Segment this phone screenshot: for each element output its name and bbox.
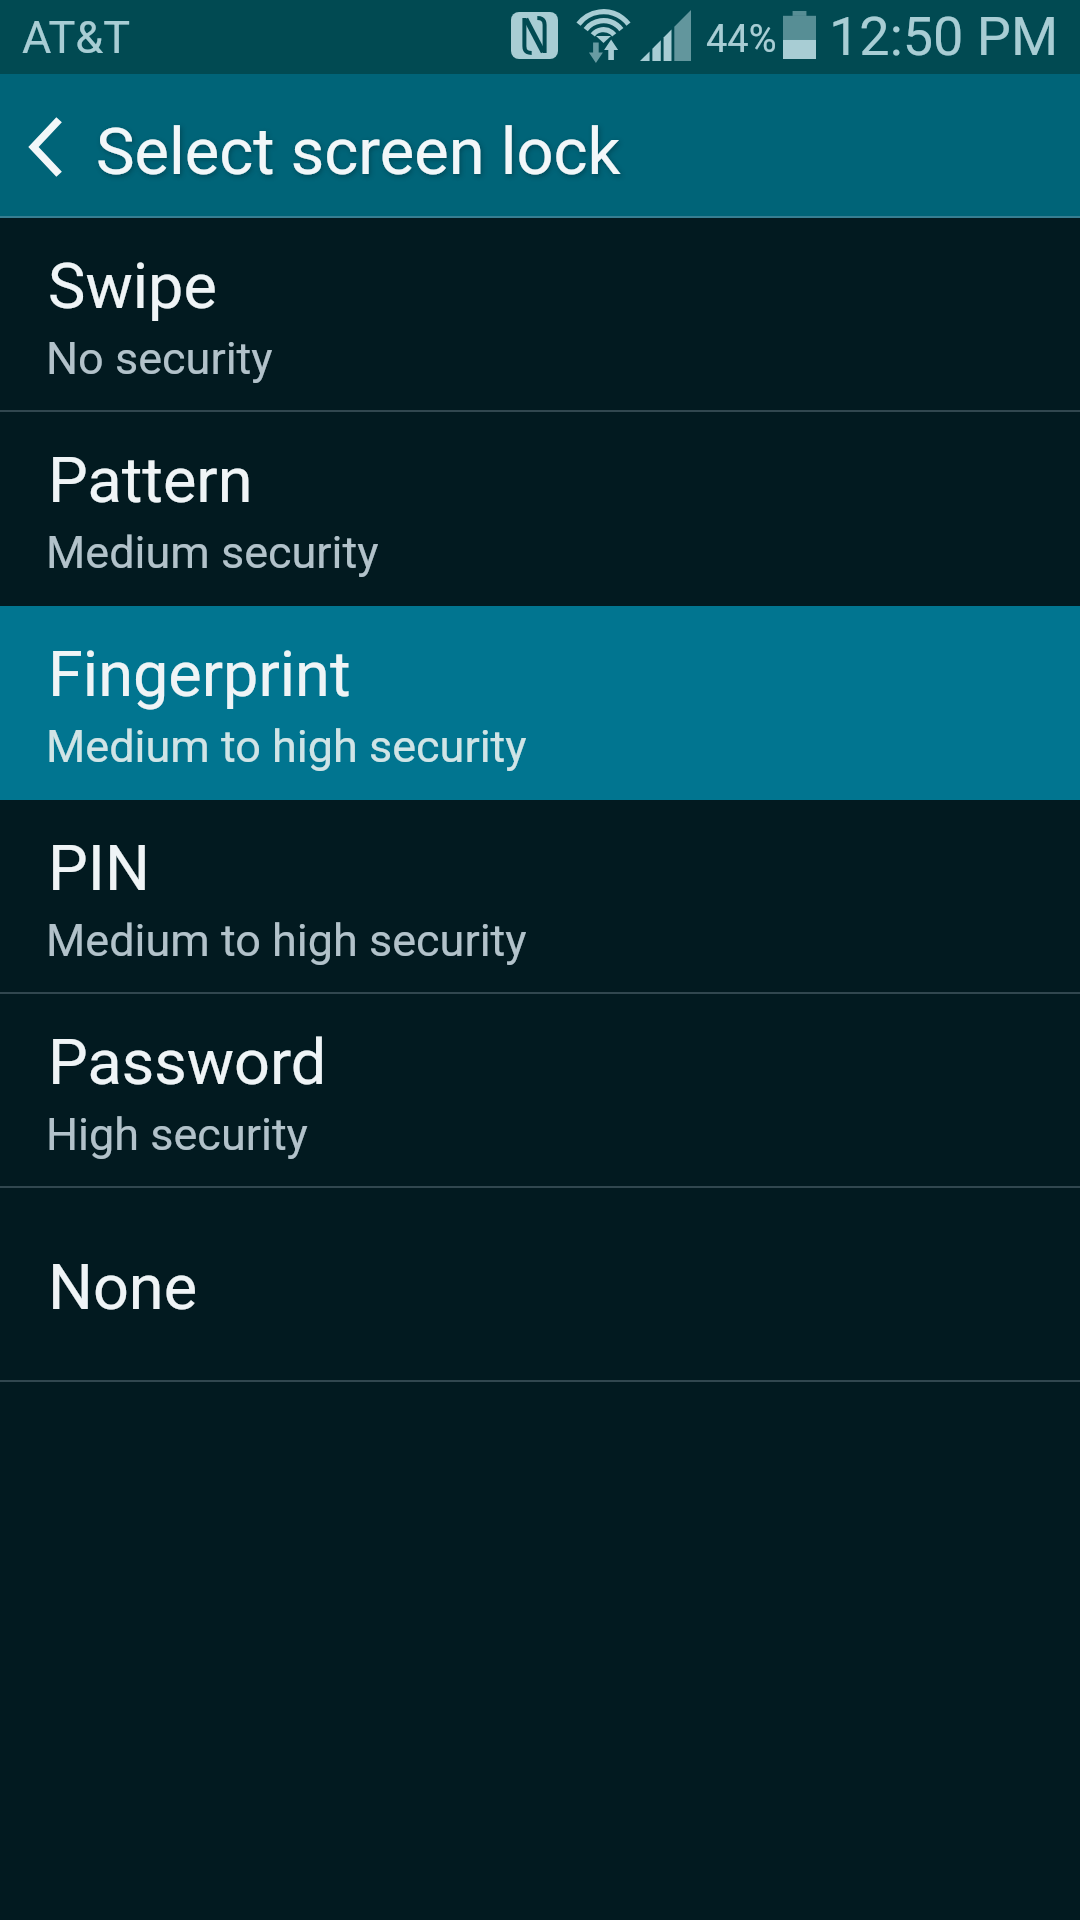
staticText: Medium to high security [46, 914, 527, 967]
staticText: 44% [706, 17, 777, 62]
staticText: Select screen lock [96, 114, 621, 190]
button[interactable]: None [0, 1188, 1080, 1382]
staticText: AT&T [22, 11, 131, 64]
button[interactable]: Navigate up [0, 74, 96, 218]
staticText: 12:50 PM [829, 5, 1059, 68]
staticText: PIN [48, 832, 150, 906]
staticText: Swipe [48, 250, 217, 324]
staticText: No security [46, 332, 273, 385]
staticText: Medium security [46, 526, 379, 579]
staticText: Password [48, 1026, 327, 1100]
staticText: Fingerprint [48, 638, 351, 712]
button[interactable]: PIN [0, 800, 1080, 994]
staticText: Medium to high security [46, 720, 527, 773]
button[interactable]: Fingerprint [0, 606, 1080, 800]
button[interactable]: Pattern [0, 412, 1080, 606]
staticText: High security [46, 1108, 308, 1161]
button[interactable]: Swipe [0, 218, 1080, 412]
staticText: None [48, 1251, 198, 1325]
button[interactable]: Password [0, 994, 1080, 1188]
staticText: Pattern [48, 444, 253, 518]
